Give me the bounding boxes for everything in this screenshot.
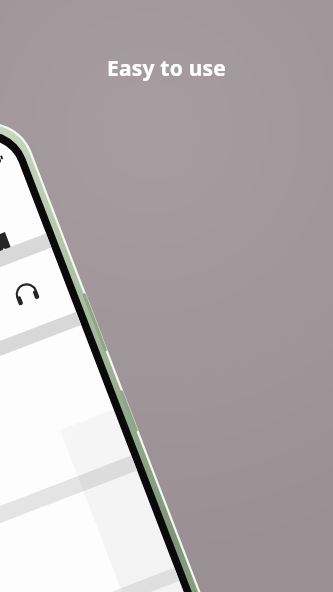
button[interactable] bbox=[0, 0, 333, 592]
